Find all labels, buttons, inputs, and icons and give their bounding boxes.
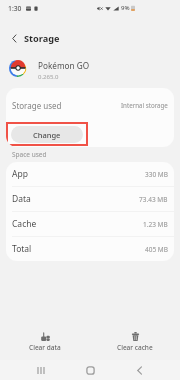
staticText: Cache [12,218,37,230]
staticText: Clear data [29,343,61,352]
staticText: Pokémon GO [38,60,90,71]
button[interactable]: Cache [12,212,168,236]
staticText: Storage used [12,100,62,111]
button[interactable]: Navigate up [5,29,23,47]
button[interactable]: Clear cache [90,324,180,360]
staticText: App [12,168,28,180]
staticText: 9% [121,4,130,12]
staticText: Clear cache [117,343,153,352]
staticText: Data [12,193,31,205]
button[interactable]: Change [11,126,83,143]
staticText: Storage [24,32,60,45]
button[interactable]: Data [12,187,168,211]
staticText: Total [12,243,32,255]
staticText: Change [33,130,61,140]
button[interactable]: App [12,162,168,186]
staticText: 330 MB [145,170,168,179]
staticText: 0.265.0 [38,73,59,81]
staticText: Internal storage [121,101,168,109]
staticText: 405 MB [145,245,168,254]
button[interactable]: Total [12,237,168,261]
button[interactable]: Back [115,360,164,380]
staticText: 73.43 MB [139,195,168,204]
staticText: 1.23 MB [143,220,168,229]
button[interactable]: Pokémon GO [0,48,180,88]
button[interactable]: Home [66,360,115,380]
staticText: 1:30 [8,4,22,13]
staticText: Space used [12,150,47,159]
button[interactable]: Clear data [0,324,90,360]
button[interactable]: Recent apps [16,360,66,380]
